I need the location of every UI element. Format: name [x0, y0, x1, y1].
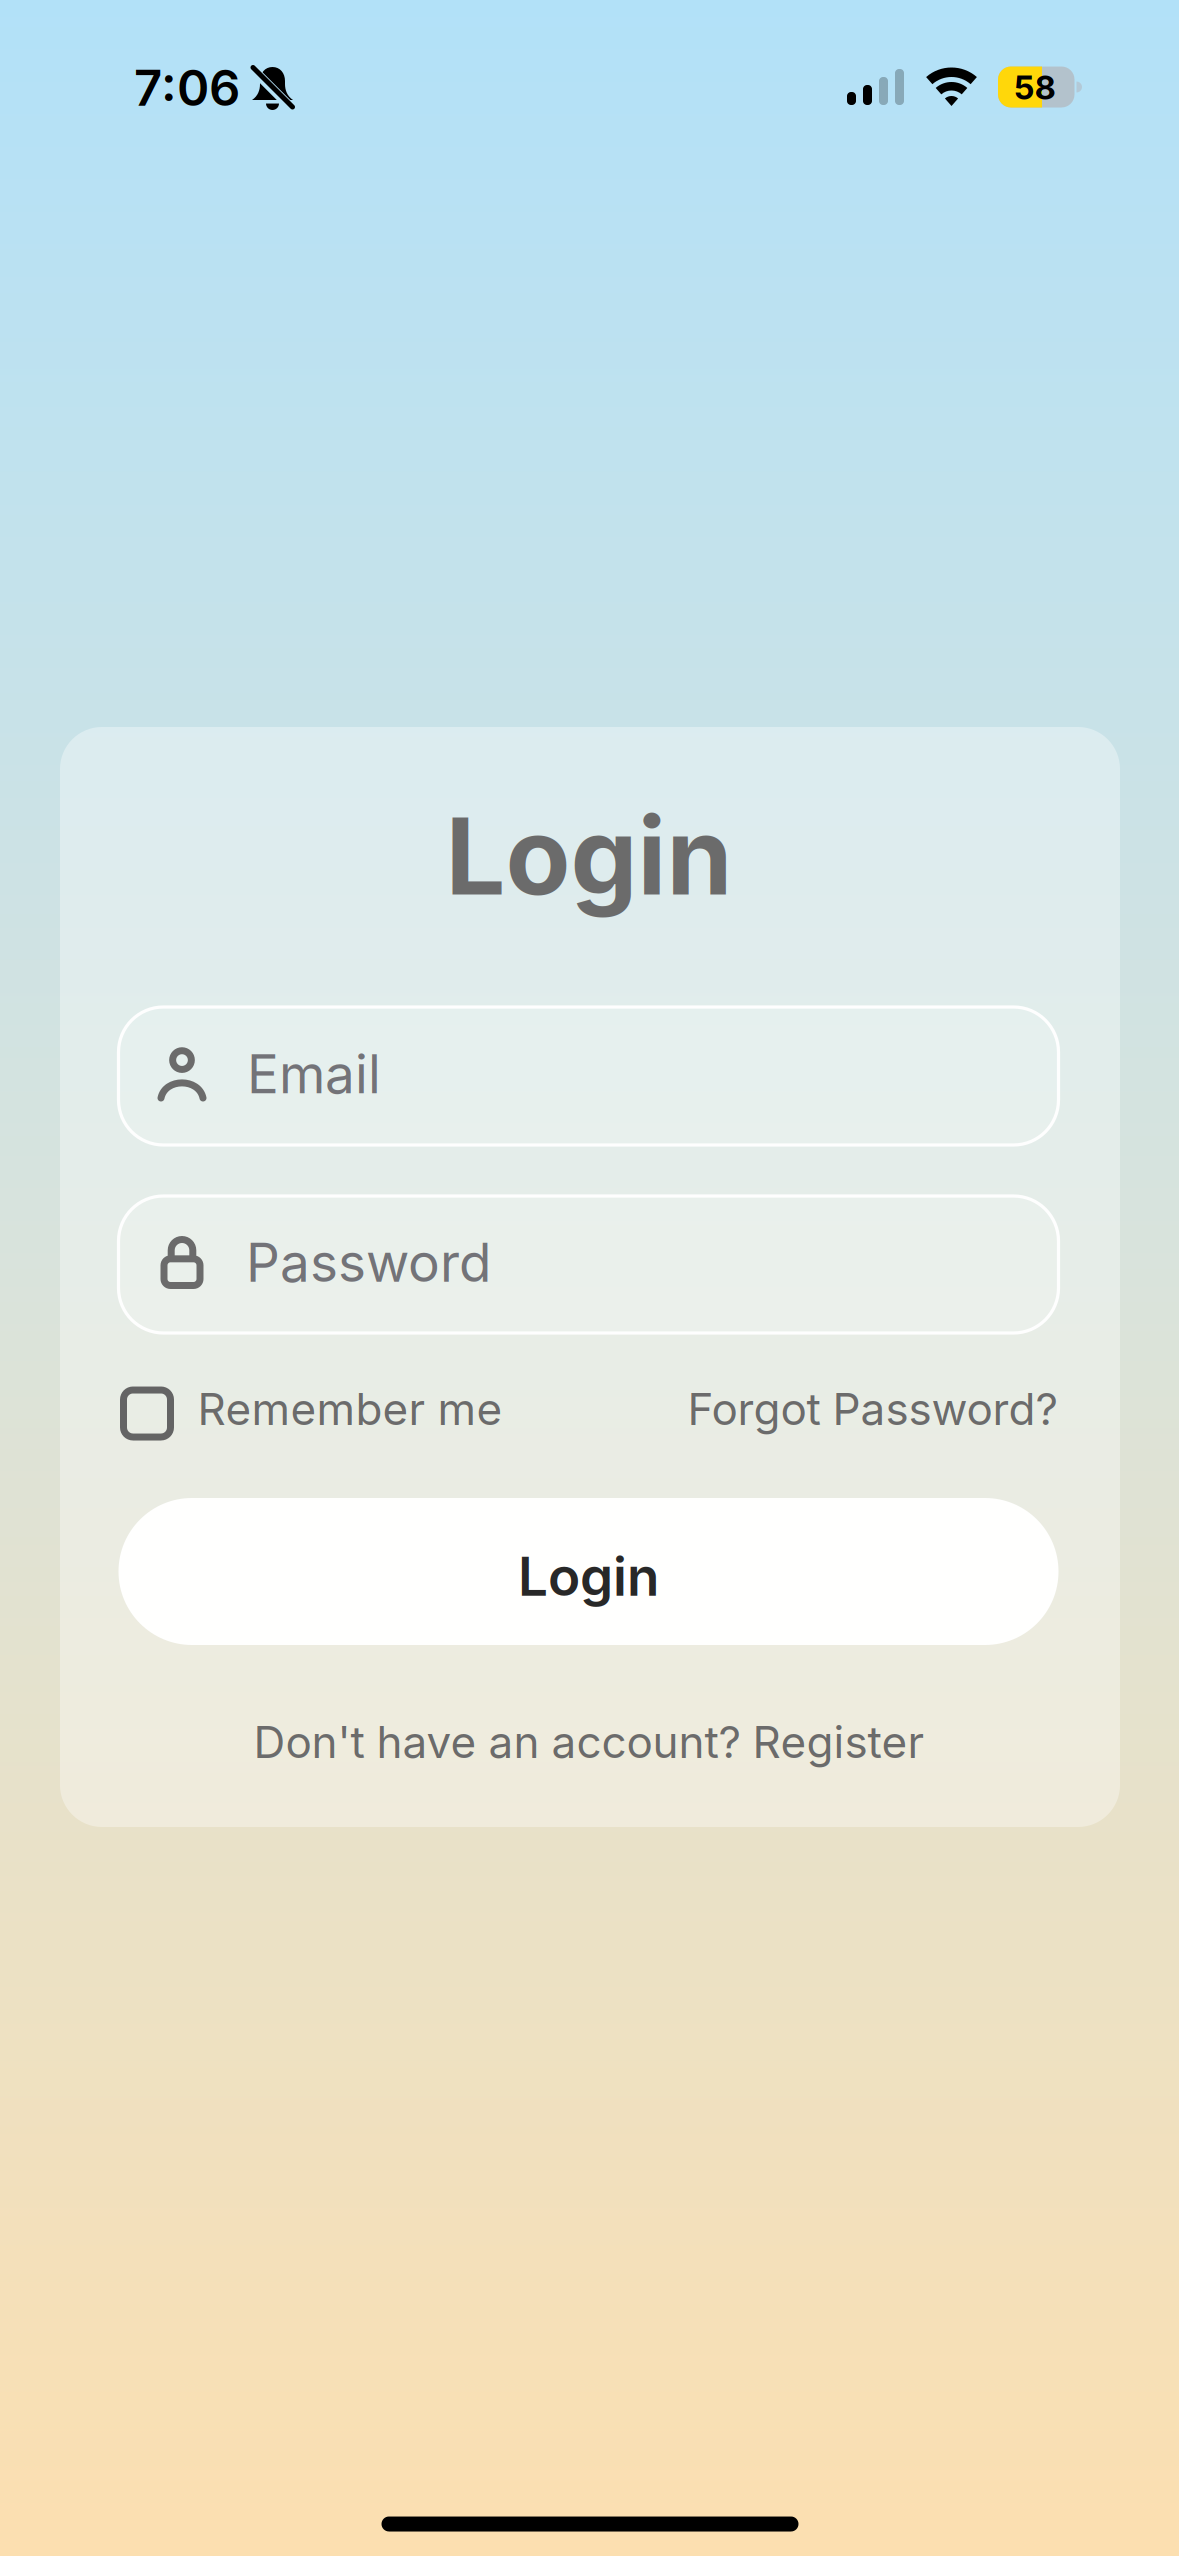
button[interactable]: Remember me [119, 1386, 502, 1438]
button[interactable]: Password [118, 1196, 1058, 1333]
staticText: 58 [1013, 68, 1055, 107]
staticText: Login [445, 793, 732, 918]
staticText: Forgot Password? [687, 1383, 1057, 1435]
button[interactable]: Email [118, 1007, 1058, 1145]
staticText: 7:06 [134, 59, 240, 117]
staticText: Remember me [197, 1383, 502, 1435]
staticText: Email [247, 1043, 381, 1105]
button[interactable]: Don't have an account? Register [253, 1716, 924, 1768]
staticText: Password [246, 1231, 491, 1294]
staticText: Don't have an account? Register [253, 1716, 924, 1768]
button[interactable]: Login [118, 1498, 1058, 1645]
button[interactable]: Forgot Password? [687, 1386, 1057, 1438]
staticText: Login [518, 1545, 659, 1608]
